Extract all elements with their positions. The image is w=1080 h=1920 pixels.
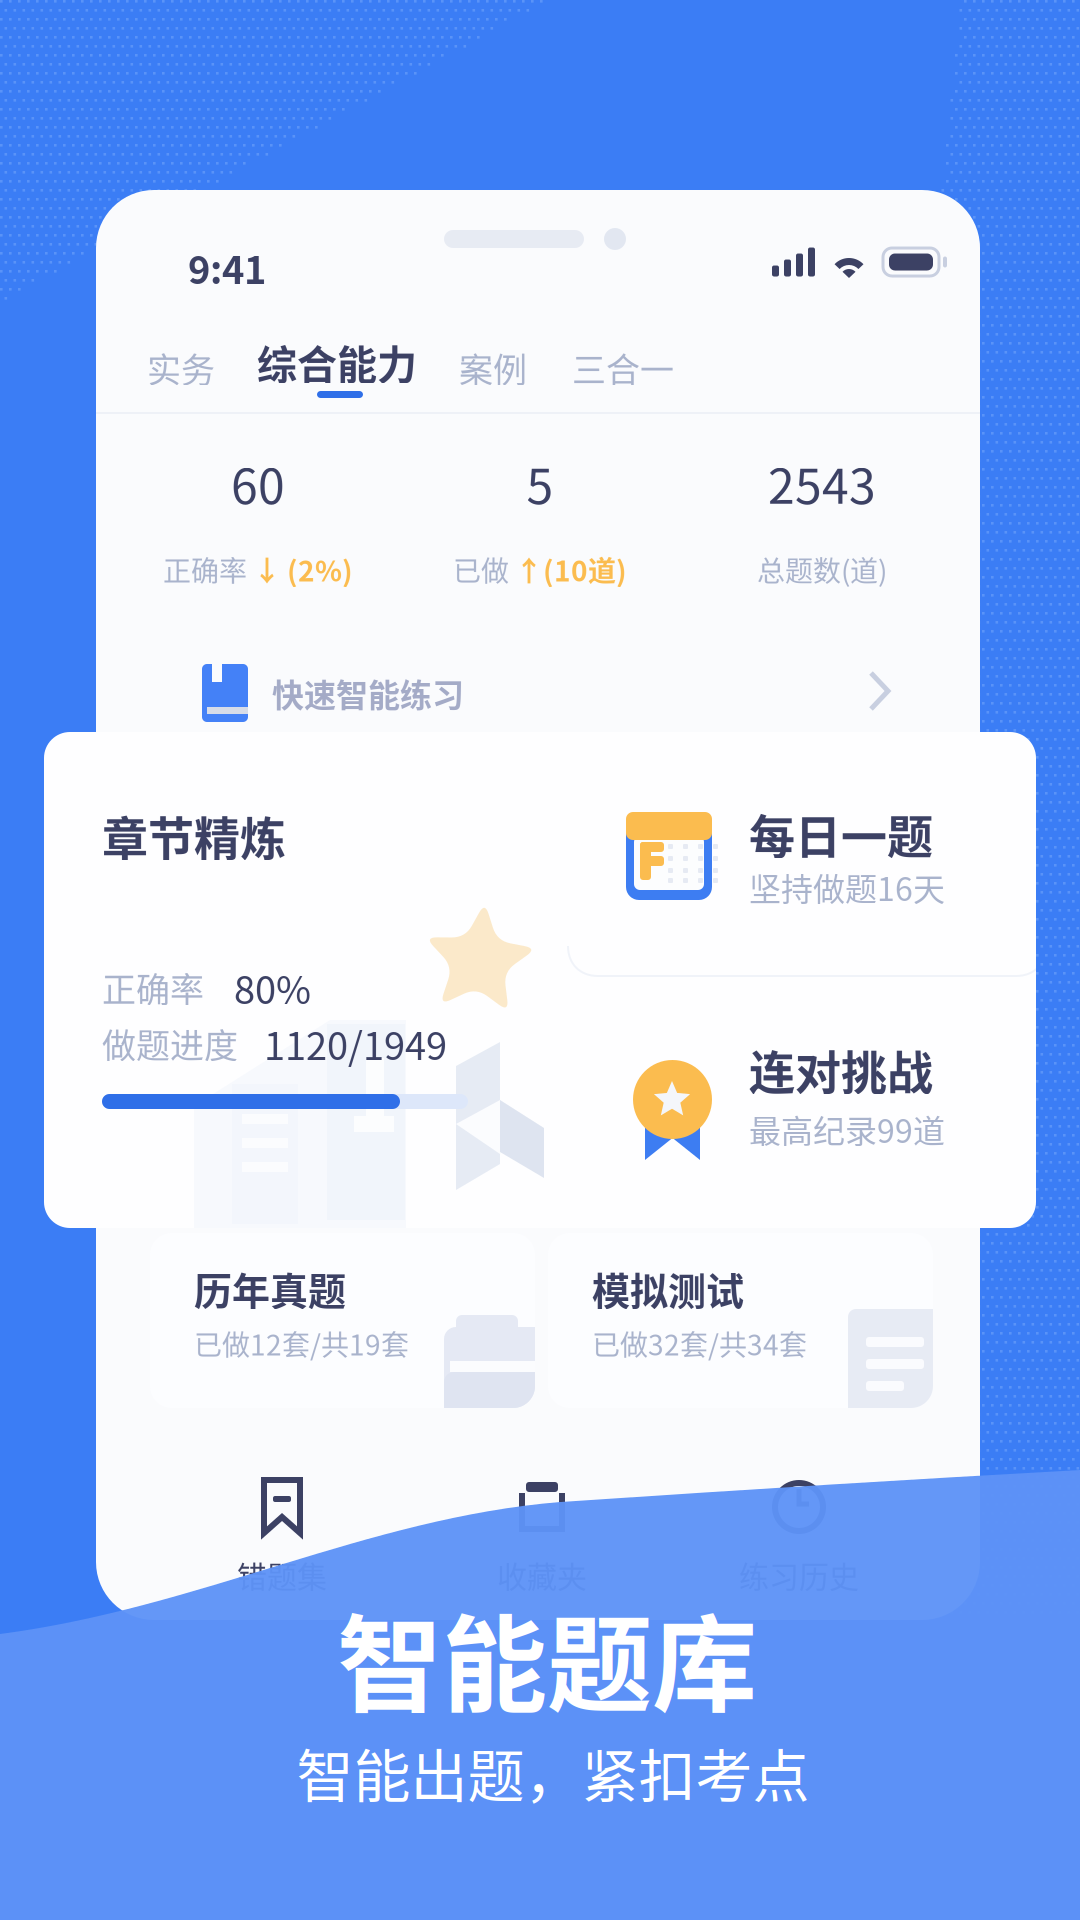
staticText: 章节精炼 [102, 802, 286, 869]
staticText: 正确率 [102, 963, 204, 1012]
staticText: 80% [234, 960, 311, 1015]
staticText: 坚持做题16天 [749, 864, 945, 910]
button[interactable]: 练习历史 [725, 1477, 873, 1596]
staticText: 5 [526, 448, 553, 517]
staticText: 综合能力 [257, 333, 417, 391]
button[interactable]: 实务 [135, 331, 227, 404]
button[interactable]: 连对挑战 [592, 976, 1036, 1228]
button[interactable]: 综合能力 [257, 333, 437, 433]
staticText: 连对挑战 [749, 1036, 933, 1103]
staticText: 快速智能练习 [272, 670, 464, 716]
staticText: 60 [231, 448, 285, 517]
staticText: 最高纪录99道 [749, 1106, 945, 1152]
staticText: 三合一 [572, 343, 674, 392]
staticText: ↓ (2%) [247, 549, 353, 589]
staticText: 正确率 [163, 549, 247, 589]
button[interactable]: 模拟测试 [548, 1233, 933, 1408]
staticText: ↑(10道) [509, 549, 627, 589]
staticText: 模拟测试 [592, 1261, 744, 1316]
button[interactable]: 历年真题 [150, 1233, 535, 1408]
staticText: 每日一题 [749, 800, 933, 867]
staticText: 做题进度 [102, 1019, 238, 1068]
button[interactable]: 快速智能练习 [96, 638, 980, 748]
staticText: 2543 [768, 448, 876, 517]
button[interactable]: 案例 [447, 331, 539, 404]
staticText: 已做32套/共34套 [592, 1323, 807, 1363]
staticText: 历年真题 [194, 1261, 346, 1316]
staticText: 已做12套/共19套 [194, 1323, 409, 1363]
staticText: 收藏夹 [497, 1553, 587, 1596]
staticText: 智能题库 [337, 1581, 757, 1733]
staticText: 9:41 [188, 240, 266, 295]
staticText: 错题集 [237, 1553, 327, 1596]
staticText: 智能出题，紧扣考点 [296, 1731, 809, 1813]
staticText: 1120/1949 [264, 1016, 447, 1071]
staticText: 总题数(道) [757, 549, 887, 589]
button[interactable]: 收藏夹 [468, 1477, 616, 1596]
staticText: 案例 [459, 343, 527, 392]
button[interactable]: 每日一题 [592, 732, 1036, 976]
button[interactable]: 错题集 [208, 1477, 356, 1596]
staticText: 实务 [147, 343, 215, 392]
staticText: 已做 [453, 549, 509, 589]
button[interactable]: 三合一 [560, 331, 686, 404]
